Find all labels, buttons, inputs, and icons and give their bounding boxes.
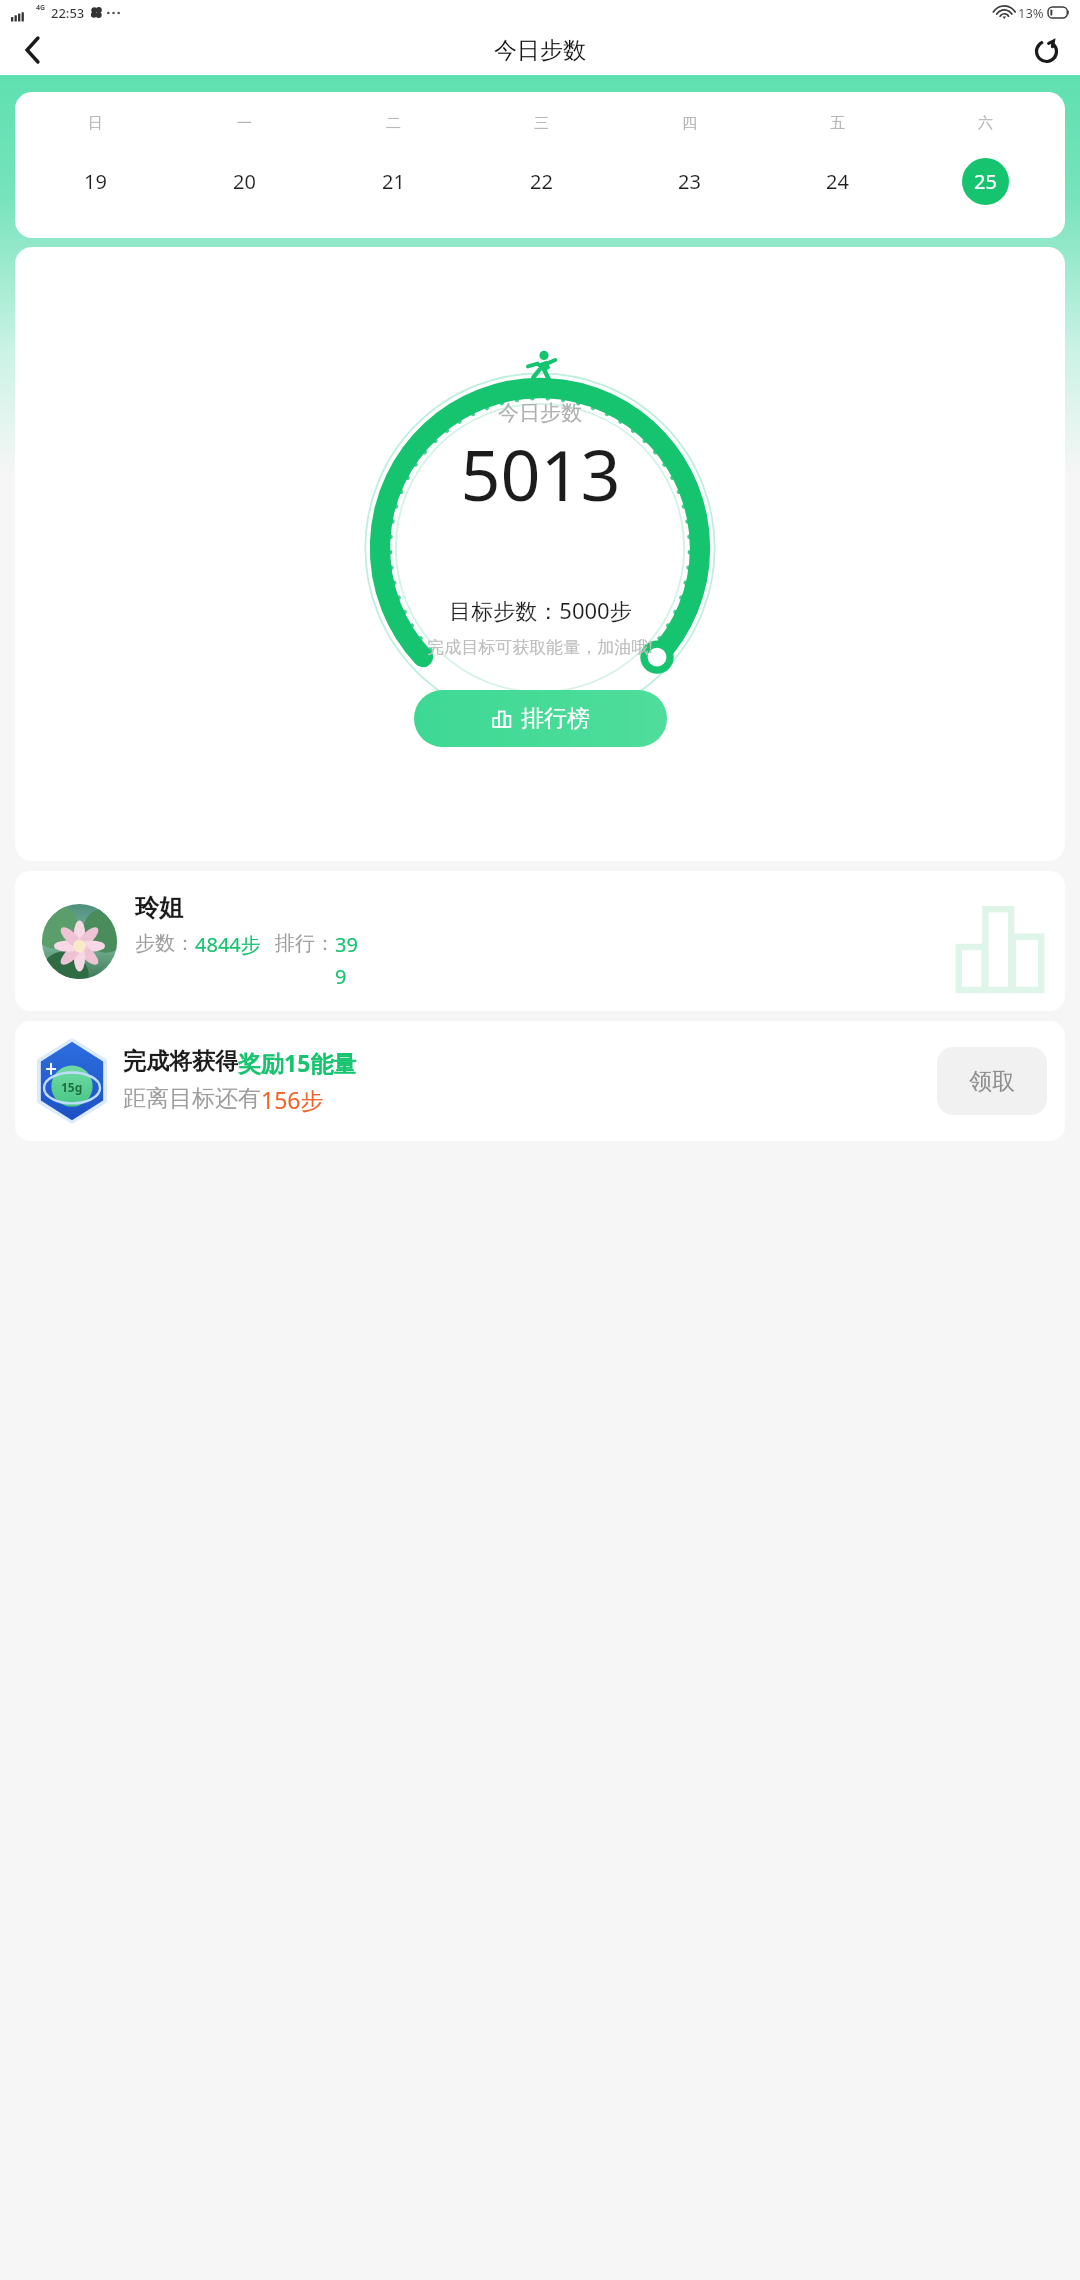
button[interactable]: 23: [666, 158, 713, 205]
staticText: 19: [84, 168, 107, 195]
staticText: 15g: [61, 1079, 83, 1095]
button[interactable]: 24: [814, 158, 861, 205]
staticText: 4844步: [195, 931, 261, 958]
staticText: 156步: [261, 1084, 324, 1115]
staticText: 四: [682, 114, 697, 133]
staticText: 距离目标还有: [123, 1084, 261, 1113]
staticText: 完成将获得: [123, 1047, 238, 1076]
staticText: 25: [974, 168, 997, 195]
staticText: 24: [826, 168, 849, 195]
button[interactable]: 领取: [937, 1047, 1047, 1115]
button[interactable]: 玲姐: [15, 871, 1065, 1011]
staticText: 5013: [460, 426, 621, 521]
staticText: 完成目标可获取能量，加油哦!: [427, 635, 653, 658]
staticText: 领取: [969, 1067, 1015, 1096]
staticText: 排行：: [275, 931, 335, 956]
staticText: 22:53: [51, 4, 85, 22]
staticText: 玲姐: [135, 893, 183, 923]
button[interactable]: 15g: [15, 1021, 1065, 1141]
staticText: 步数：: [135, 931, 195, 956]
staticText: 21: [382, 168, 405, 195]
staticText: 23: [678, 168, 701, 195]
staticText: 奖励15能量: [238, 1047, 357, 1078]
button[interactable]: Back: [8, 26, 56, 74]
staticText: 一: [237, 114, 252, 133]
button[interactable]: 19: [72, 158, 119, 205]
staticText: 目标步数：5000步: [449, 595, 632, 625]
button[interactable]: 日: [15, 92, 1065, 238]
staticText: 今日步数: [498, 400, 582, 426]
staticText: 4G: [36, 3, 46, 13]
button[interactable]: Share: [1022, 26, 1070, 74]
staticText: 今日步数: [494, 36, 586, 65]
staticText: 三: [534, 114, 549, 133]
staticText: 20: [233, 168, 256, 195]
staticText: 二: [386, 114, 401, 133]
staticText: 22: [530, 168, 553, 195]
staticText: 13%: [1018, 4, 1044, 22]
staticText: 六: [978, 114, 993, 133]
staticText: 五: [830, 114, 845, 133]
button[interactable]: 21: [370, 158, 417, 205]
staticText: 排行榜: [521, 704, 590, 733]
staticText: 399: [335, 931, 369, 990]
staticText: 日: [88, 114, 103, 133]
button[interactable]: 20: [221, 158, 268, 205]
button[interactable]: 25: [962, 158, 1009, 205]
button[interactable]: 22: [518, 158, 565, 205]
button[interactable]: 排行榜: [414, 690, 667, 747]
